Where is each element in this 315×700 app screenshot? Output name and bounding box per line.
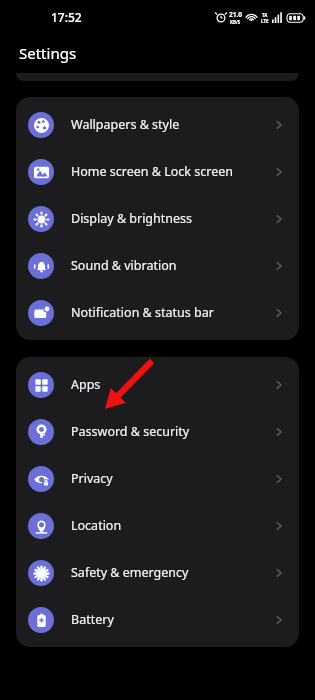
staticText: Safety & emergency [71, 564, 189, 581]
button[interactable]: Battery [16, 596, 299, 643]
button[interactable]: Notification & status bar [16, 289, 299, 336]
staticText: Location [71, 517, 122, 534]
staticText: Apps [71, 376, 101, 393]
staticText: Password & security [71, 423, 190, 440]
button[interactable]: Home screen & Lock screen [16, 148, 299, 195]
staticText: Settings [19, 43, 77, 63]
staticText: Battery [71, 611, 114, 628]
button[interactable]: Safety & emergency [16, 549, 299, 596]
button[interactable]: Apps [16, 361, 299, 408]
staticText: Wallpapers & style [71, 116, 180, 133]
staticText: TA [262, 12, 268, 18]
button[interactable]: Password & security [16, 408, 299, 455]
button[interactable]: Location [16, 502, 299, 549]
staticText: 17:52 [51, 9, 82, 25]
staticText: KB/S [230, 19, 241, 25]
staticText: Privacy [71, 470, 113, 487]
button[interactable]: Privacy [16, 455, 299, 502]
staticText: Sound & vibration [71, 257, 177, 274]
staticText: 21.0 [229, 10, 242, 19]
button[interactable]: Display & brightness [16, 195, 299, 242]
staticText: Notification & status bar [71, 304, 214, 321]
staticText: Home screen & Lock screen [71, 163, 233, 180]
button[interactable]: Wallpapers & style [16, 101, 299, 148]
button[interactable]: Sound & vibration [16, 242, 299, 289]
staticText: Display & brightness [71, 210, 193, 227]
staticText: LTE [261, 18, 269, 24]
